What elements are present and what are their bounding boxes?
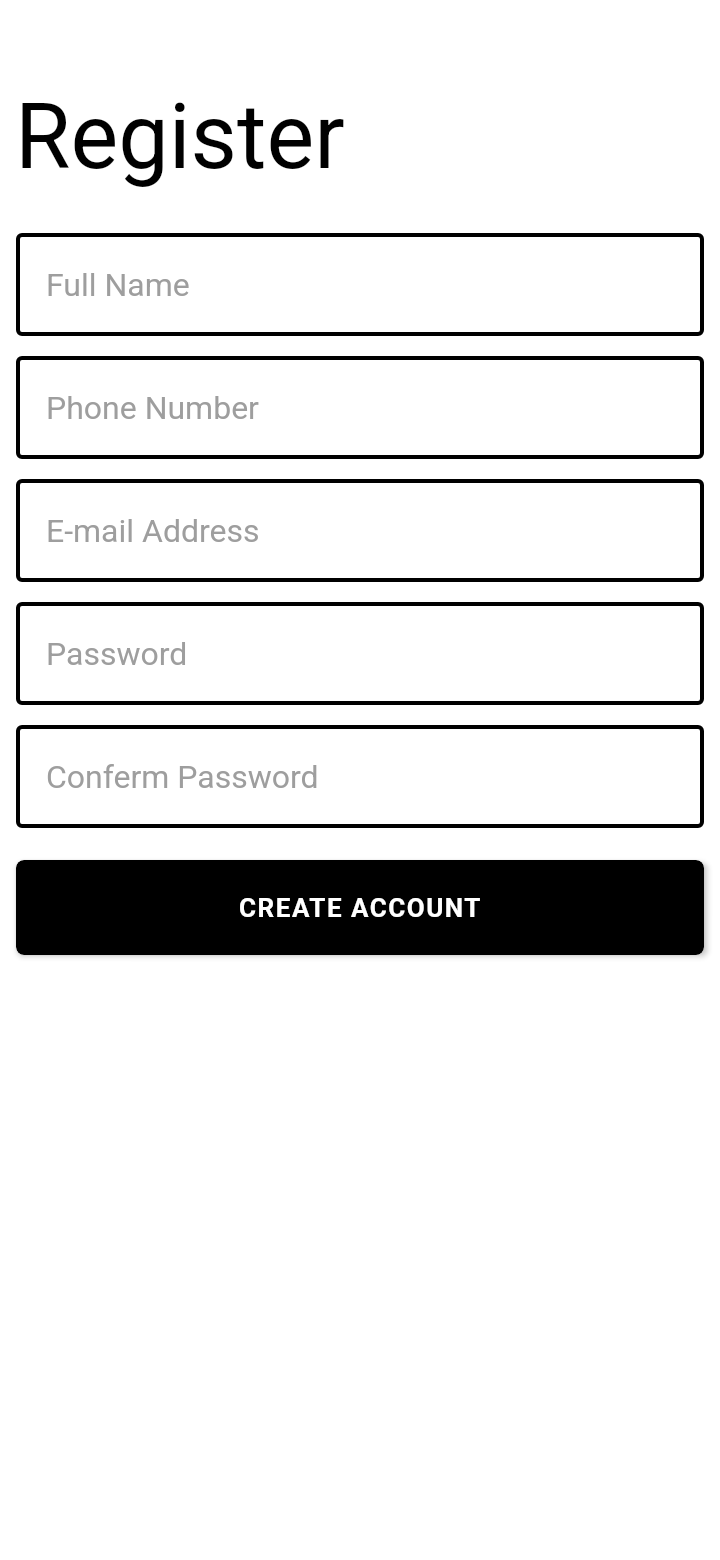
staticText: Register [15, 85, 345, 190]
staticText: CREATE ACCOUNT [239, 893, 482, 923]
staticText: E-mail Address [46, 512, 260, 550]
staticText: Phone Number [46, 389, 259, 427]
button[interactable]: CREATE ACCOUNT [16, 860, 704, 955]
button[interactable]: Password [16, 602, 704, 705]
button[interactable]: Full Name [16, 233, 704, 336]
button[interactable]: Conferm Password [16, 725, 704, 828]
staticText: Conferm Password [46, 758, 319, 796]
staticText: Full Name [46, 266, 190, 304]
button[interactable]: Phone Number [16, 356, 704, 459]
staticText: Password [46, 635, 188, 673]
button[interactable]: E-mail Address [16, 479, 704, 582]
